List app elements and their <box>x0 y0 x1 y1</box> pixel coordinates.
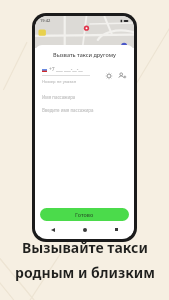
staticText: Имя пассажира <box>42 94 76 100</box>
button[interactable]: Домой <box>81 226 88 233</box>
button[interactable]: Готово <box>40 208 129 221</box>
staticText: Введите имя пассажира <box>42 107 94 113</box>
button[interactable]: Назад <box>49 226 56 233</box>
button[interactable]: Недавние <box>113 226 120 233</box>
button[interactable]: Выбрать контакт <box>116 70 127 81</box>
staticText: родным и близким <box>15 263 155 282</box>
staticText: 19:42 <box>40 18 51 23</box>
staticText: Вызывайте такси <box>22 238 148 257</box>
staticText: +7 ___ ___-__-__ <box>49 66 83 73</box>
staticText: Номер не указан <box>42 79 77 85</box>
button[interactable]: Настройки <box>104 71 113 80</box>
staticText: Вызвать такси другому <box>35 51 134 58</box>
staticText: Готово <box>75 211 94 218</box>
